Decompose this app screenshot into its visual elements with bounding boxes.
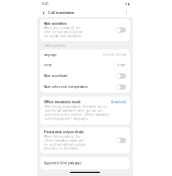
staticText: Female xyxy=(117,63,126,67)
button[interactable]: Voice xyxy=(40,60,130,70)
button[interactable]: Process data only on device xyxy=(37,127,133,153)
staticText: Process data only on device xyxy=(44,130,84,134)
staticText: Mute soundbank xyxy=(44,74,67,78)
button[interactable]: Download xyxy=(111,100,126,104)
button[interactable]: Back xyxy=(41,8,46,17)
staticText: · ıl ▮ xyxy=(123,2,129,6)
button[interactable]: Supported third party apps xyxy=(37,153,133,169)
staticText: ‹ xyxy=(42,8,44,17)
staticText: When this is enabled, the offline transl… xyxy=(44,135,86,150)
button[interactable]: Mute soundbank xyxy=(40,70,130,81)
staticText: Voice xyxy=(44,63,52,67)
staticText: Other persons xyxy=(45,44,65,47)
staticText: Supported third party apps xyxy=(44,162,81,165)
staticText: Download xyxy=(111,100,126,104)
staticText: Call translation xyxy=(48,10,74,15)
button[interactable]: Language xyxy=(40,49,130,60)
staticText: Chinese (China) xyxy=(103,53,126,56)
staticText: Mute soundbox xyxy=(44,22,66,25)
staticText: 9:41 xyxy=(42,2,49,6)
staticText: After being downloaded, this mode will b… xyxy=(44,105,109,120)
staticText: Mute other-end interpretation xyxy=(44,85,88,89)
staticText: ⋮ xyxy=(124,10,128,15)
button[interactable]: Mute soundbox xyxy=(37,19,133,41)
button[interactable]: Mute other-end interpretation xyxy=(40,81,130,92)
staticText: Language xyxy=(44,53,57,56)
button[interactable]: More options xyxy=(124,8,129,17)
staticText: Offline translation mode xyxy=(44,100,81,104)
staticText: When this is enabled, the other person c… xyxy=(44,26,82,38)
